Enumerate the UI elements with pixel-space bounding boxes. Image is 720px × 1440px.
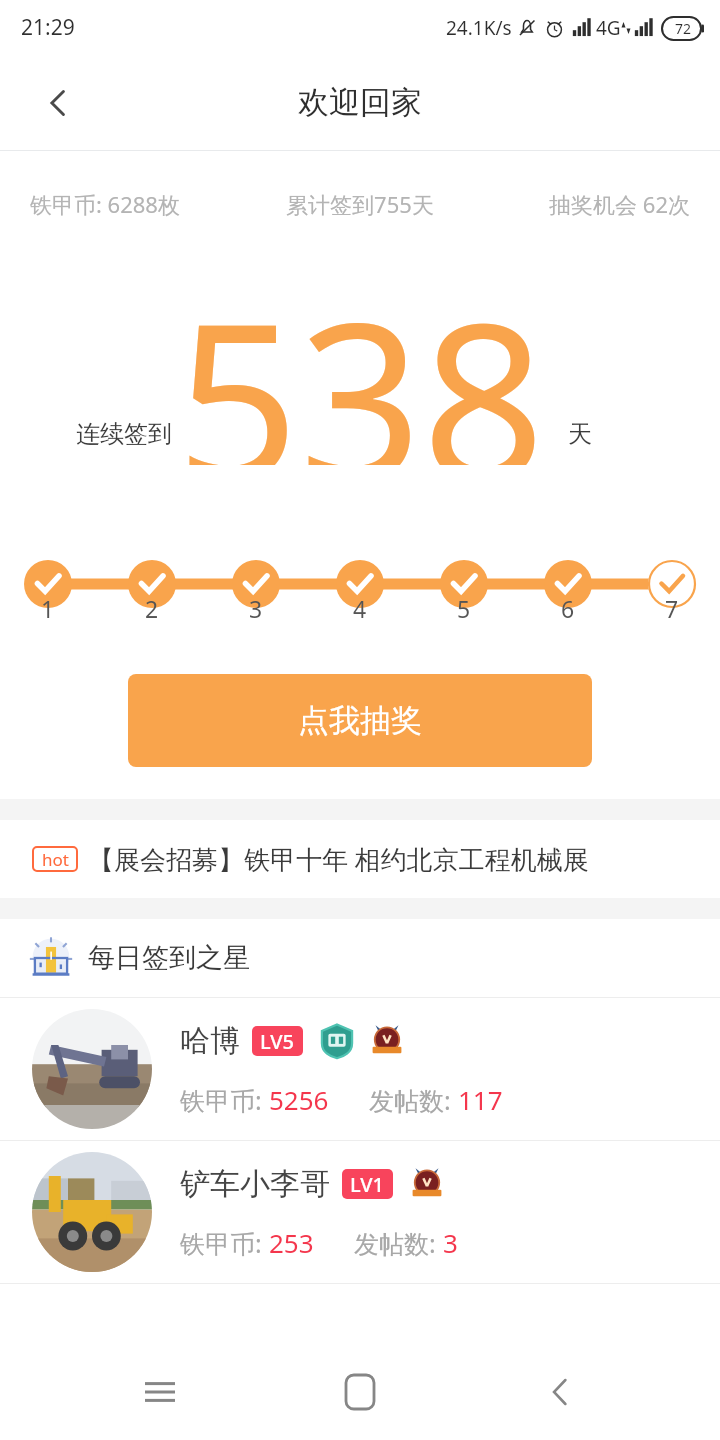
staticText: LV5 xyxy=(260,1028,295,1055)
staticText: 24.1K/s xyxy=(446,15,512,41)
staticText: 21:29 xyxy=(21,13,75,42)
staticText: 【展会招募】铁甲十年 相约北京工程机械展 xyxy=(88,841,589,877)
staticText: hot xyxy=(42,848,69,871)
staticText: 3 xyxy=(249,593,263,624)
button[interactable]: 点我抽奖 xyxy=(128,674,592,767)
staticText: 5 xyxy=(457,593,471,624)
staticText: 6 xyxy=(561,593,575,624)
button[interactable]: Recents xyxy=(120,1352,200,1432)
staticText: 253 xyxy=(269,1225,314,1260)
staticText: 铁甲币: xyxy=(180,1226,269,1260)
staticText: LV1 xyxy=(350,1171,385,1198)
button[interactable]: hot xyxy=(0,820,720,898)
staticText: 天 xyxy=(568,419,592,449)
button[interactable]: Back xyxy=(520,1352,600,1432)
staticText: 117 xyxy=(458,1082,503,1117)
staticText: 5256 xyxy=(269,1082,329,1117)
staticText: 哈博 xyxy=(180,1022,240,1060)
button[interactable]: 铲车小李哥 xyxy=(0,1141,720,1283)
staticText: 累计签到755天 xyxy=(250,189,470,219)
staticText: 点我抽奖 xyxy=(298,701,422,740)
staticText: 1 xyxy=(41,593,55,624)
staticText: 抽奖机会 62次 xyxy=(470,189,690,219)
staticText: 铁甲币: xyxy=(180,1083,269,1117)
staticText: 欢迎回家 xyxy=(298,83,422,122)
staticText: 538 xyxy=(176,250,545,465)
staticText: 72 xyxy=(675,19,692,38)
button[interactable]: Home xyxy=(320,1352,400,1432)
staticText: 铲车小李哥 xyxy=(180,1165,330,1203)
staticText: 3 xyxy=(443,1225,458,1260)
staticText: 7 xyxy=(665,593,679,624)
button[interactable]: Back xyxy=(20,65,96,141)
button[interactable]: 哈博 xyxy=(0,998,720,1140)
staticText: 铁甲币: 6288枚 xyxy=(30,189,250,219)
staticText: 发帖数: xyxy=(369,1083,458,1117)
staticText: 4G xyxy=(596,15,621,41)
staticText: 连续签到 xyxy=(76,419,172,449)
staticText: 发帖数: xyxy=(354,1226,443,1260)
staticText: 每日签到之星 xyxy=(88,941,250,975)
staticText: 4 xyxy=(353,593,367,624)
staticText: 2 xyxy=(145,593,159,624)
